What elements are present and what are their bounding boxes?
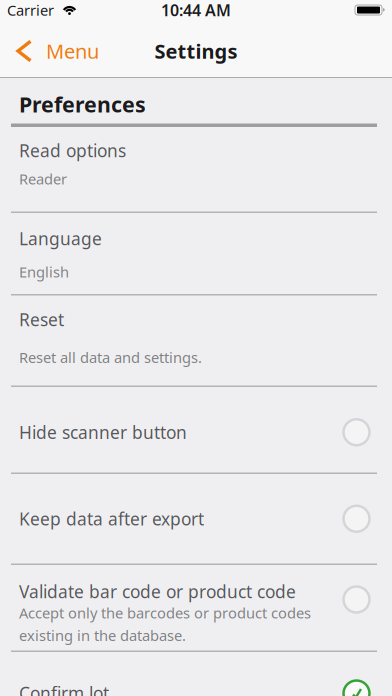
staticText: Reset [19, 308, 64, 331]
button[interactable]: Reset [0, 295, 392, 387]
staticText: Carrier [7, 0, 54, 20]
staticText: Preferences [19, 90, 146, 118]
staticText: Hide scanner button [19, 421, 187, 444]
staticText: Settings [154, 38, 237, 64]
staticText: Reset all data and settings. [19, 347, 202, 367]
button[interactable]: Back to Menu [0, 34, 99, 64]
staticText: Confirm lot [19, 681, 109, 696]
button[interactable]: Confirm lot [0, 652, 392, 696]
staticText: Reader [19, 169, 67, 188]
staticText: English [19, 262, 69, 281]
staticText: existing in the database. [19, 625, 186, 645]
staticText: Accept only the barcodes or product code… [19, 603, 311, 622]
button[interactable]: Keep data after export [0, 474, 392, 565]
button[interactable]: Language [0, 213, 392, 295]
staticText: Menu [46, 38, 99, 64]
staticText: Validate bar code or product code [19, 580, 296, 603]
button[interactable]: Validate bar code or product code [0, 565, 392, 652]
button[interactable]: Read options [0, 127, 392, 213]
button[interactable]: Hide scanner button [0, 387, 392, 474]
staticText: Language [19, 227, 102, 250]
staticText: Read options [19, 139, 126, 162]
staticText: Keep data after export [19, 507, 204, 530]
staticText: 10:44 AM [161, 0, 231, 21]
